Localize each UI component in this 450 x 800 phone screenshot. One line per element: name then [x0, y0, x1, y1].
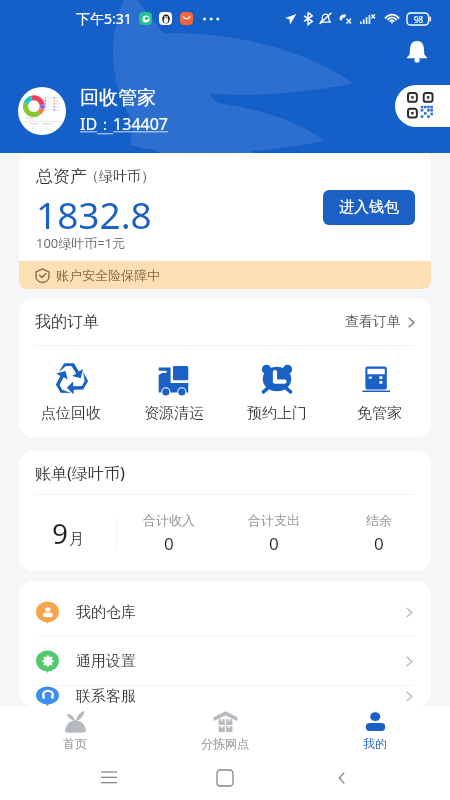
- button[interactable]: 联系客服: [19, 686, 431, 706]
- staticText: 分拣网点: [201, 736, 249, 751]
- button[interactable]: 首页: [0, 710, 150, 751]
- staticText: ID：134407: [80, 113, 169, 135]
- staticText: 进入钱包: [339, 198, 399, 217]
- staticText: 0: [164, 532, 174, 555]
- staticText: 100绿叶币=1元: [36, 234, 126, 252]
- staticText: 0: [374, 532, 384, 555]
- button[interactable]: 我的: [300, 710, 450, 751]
- staticText: 账单(绿叶币): [35, 462, 125, 484]
- staticText: 回收管家: [80, 86, 156, 110]
- button[interactable]: 点位回收: [19, 362, 122, 423]
- staticText: 我的订单: [35, 312, 99, 332]
- staticText: 联系客服: [76, 687, 136, 706]
- staticText: 通用设置: [76, 652, 136, 671]
- button[interactable]: 通用设置: [19, 637, 431, 685]
- staticText: 9: [52, 514, 69, 552]
- button[interactable]: 预约上门: [225, 362, 328, 423]
- button[interactable]: 资源清运: [122, 362, 225, 423]
- staticText: 资源清运: [144, 404, 204, 423]
- staticText: 免管家: [357, 404, 402, 423]
- staticText: 98: [414, 14, 424, 25]
- staticText: 结余: [366, 512, 392, 528]
- staticText: 我的仓库: [76, 603, 136, 622]
- staticText: 0: [269, 532, 279, 555]
- button[interactable]: 查看订单: [345, 313, 417, 331]
- button[interactable]: Avatar: [18, 87, 66, 135]
- staticText: 总资产: [36, 166, 87, 187]
- staticText: （绿叶币）: [85, 168, 155, 186]
- staticText: 点位回收: [41, 404, 101, 423]
- button[interactable]: 分拣网点: [150, 710, 300, 751]
- button[interactable]: 进入钱包: [323, 190, 415, 225]
- staticText: 我的: [363, 736, 387, 751]
- staticText: 查看订单: [345, 313, 401, 331]
- staticText: 下午5:31: [76, 9, 132, 28]
- staticText: 首页: [63, 736, 87, 751]
- staticText: 合计支出: [248, 512, 300, 528]
- button[interactable]: Notifications: [402, 36, 432, 66]
- staticText: 合计收入: [143, 512, 195, 528]
- staticText: 1832.8: [36, 189, 152, 239]
- staticText: 账户安全险保障中: [56, 267, 160, 283]
- staticText: 预约上门: [247, 404, 307, 423]
- button[interactable]: 我的仓库: [19, 588, 431, 636]
- button[interactable]: 免管家: [328, 362, 431, 423]
- button[interactable]: Scan QR code: [395, 85, 450, 127]
- staticText: 月: [69, 530, 84, 549]
